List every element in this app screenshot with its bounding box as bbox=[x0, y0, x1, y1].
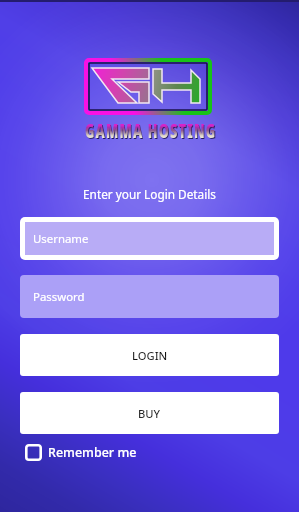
staticText: GAMMA HOSTING bbox=[85, 118, 217, 144]
button[interactable]: Username bbox=[25, 222, 274, 255]
staticText: Username bbox=[33, 231, 89, 247]
staticText: GAMMA HOSTING bbox=[86, 119, 218, 145]
button[interactable]: Remember me bbox=[25, 442, 137, 462]
staticText: LOGIN bbox=[132, 348, 168, 363]
staticText: Enter your Login Details bbox=[83, 186, 216, 202]
staticText: BUY bbox=[138, 406, 161, 421]
button[interactable]: Password bbox=[20, 275, 279, 318]
staticText: Remember me bbox=[48, 444, 137, 461]
button[interactable]: BUY bbox=[20, 392, 279, 434]
button[interactable]: LOGIN bbox=[20, 334, 279, 376]
staticText: Password bbox=[33, 289, 85, 305]
